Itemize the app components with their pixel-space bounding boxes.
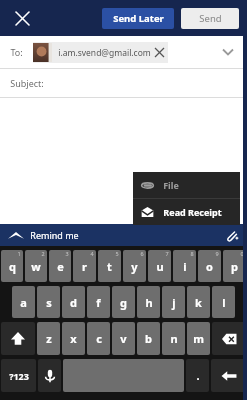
staticText: 2 bbox=[41, 250, 45, 257]
staticText: r bbox=[82, 259, 87, 274]
button[interactable]: 5 bbox=[98, 250, 121, 282]
staticText: Send bbox=[199, 12, 222, 25]
staticText: j bbox=[172, 295, 176, 310]
button[interactable]: Remind me bbox=[8, 229, 79, 241]
button[interactable]: Send bbox=[181, 8, 239, 29]
button[interactable]: Shift bbox=[1, 322, 35, 355]
staticText: d bbox=[70, 295, 77, 310]
staticText: p bbox=[231, 259, 238, 274]
button[interactable]: 7 bbox=[148, 250, 171, 282]
button[interactable]: 8 bbox=[173, 250, 196, 282]
staticText: 7 bbox=[165, 250, 169, 257]
button[interactable]: Subject: bbox=[0, 69, 247, 97]
staticText: 9 bbox=[215, 250, 219, 257]
button[interactable]: k bbox=[187, 286, 210, 318]
staticText: e bbox=[57, 259, 64, 274]
button[interactable]: Voice input bbox=[38, 359, 61, 392]
button[interactable]: 6 bbox=[123, 250, 146, 282]
button[interactable]: Read Receipt bbox=[133, 199, 240, 225]
button[interactable]: d bbox=[62, 286, 85, 318]
button[interactable]: m bbox=[187, 322, 210, 355]
button[interactable]: j bbox=[162, 286, 185, 318]
staticText: File bbox=[163, 179, 179, 191]
button[interactable]: . bbox=[186, 359, 209, 392]
staticText: 6 bbox=[140, 250, 144, 257]
staticText: w bbox=[31, 259, 41, 274]
button[interactable]: Backspace bbox=[212, 322, 246, 355]
button[interactable]: Close bbox=[8, 4, 36, 32]
button[interactable]: Send Later bbox=[102, 8, 174, 29]
button[interactable]: f bbox=[87, 286, 110, 318]
button[interactable]: a bbox=[12, 286, 35, 318]
button[interactable]: 4 bbox=[73, 250, 96, 282]
button[interactable]: h bbox=[137, 286, 160, 318]
staticText: o bbox=[206, 259, 213, 274]
staticText: c bbox=[96, 331, 102, 346]
button[interactable]: i.am.svend@gmail.com bbox=[33, 42, 168, 63]
button[interactable]: 2 bbox=[25, 250, 47, 282]
staticText: t bbox=[107, 259, 112, 274]
staticText: 1 bbox=[17, 250, 21, 257]
staticText: Subject: bbox=[10, 77, 44, 89]
staticText: k bbox=[195, 295, 202, 310]
button[interactable]: z bbox=[37, 322, 60, 355]
staticText: u bbox=[156, 259, 164, 274]
button[interactable]: s bbox=[37, 286, 60, 318]
staticText: 8 bbox=[190, 250, 194, 257]
button[interactable]: 3 bbox=[49, 250, 71, 282]
staticText: 3 bbox=[65, 250, 69, 257]
staticText: ?123 bbox=[9, 370, 29, 382]
staticText: y bbox=[131, 259, 138, 274]
staticText: To: bbox=[10, 46, 23, 58]
staticText: 5 bbox=[115, 250, 119, 257]
button[interactable]: File bbox=[133, 172, 240, 198]
button[interactable]: x bbox=[62, 322, 85, 355]
staticText: i bbox=[183, 259, 187, 274]
button[interactable]: 0 bbox=[223, 250, 246, 282]
staticText: f bbox=[96, 295, 101, 310]
button[interactable]: Expand recipients bbox=[215, 39, 241, 65]
staticText: . bbox=[196, 368, 200, 383]
button[interactable]: c bbox=[87, 322, 110, 355]
button[interactable]: b bbox=[137, 322, 160, 355]
button[interactable]: Enter bbox=[211, 359, 246, 392]
staticText: Remind me bbox=[30, 229, 79, 241]
staticText: m bbox=[193, 331, 204, 346]
staticText: b bbox=[145, 331, 152, 346]
button[interactable]: l bbox=[212, 286, 235, 318]
staticText: q bbox=[9, 259, 16, 274]
staticText: s bbox=[46, 295, 52, 310]
staticText: h bbox=[145, 295, 153, 310]
staticText: Send Later bbox=[113, 12, 164, 25]
button[interactable]: Attach bbox=[223, 227, 239, 243]
staticText: 4 bbox=[90, 250, 94, 257]
staticText: l bbox=[222, 295, 226, 310]
staticText: v bbox=[120, 331, 127, 346]
staticText: n bbox=[170, 331, 178, 346]
button[interactable]: n bbox=[162, 322, 185, 355]
button[interactable]: 9 bbox=[198, 250, 221, 282]
button[interactable]: ?123 bbox=[1, 359, 36, 392]
staticText: 0 bbox=[240, 250, 244, 257]
button[interactable]: g bbox=[112, 286, 135, 318]
staticText: Read Receipt bbox=[163, 206, 222, 218]
staticText: i.am.svend@gmail.com bbox=[58, 47, 151, 59]
staticText: x bbox=[70, 331, 77, 346]
staticText: z bbox=[46, 331, 52, 346]
staticText: a bbox=[20, 295, 27, 310]
staticText: g bbox=[120, 295, 127, 310]
button[interactable]: 1 bbox=[1, 250, 23, 282]
button[interactable]: v bbox=[112, 322, 135, 355]
